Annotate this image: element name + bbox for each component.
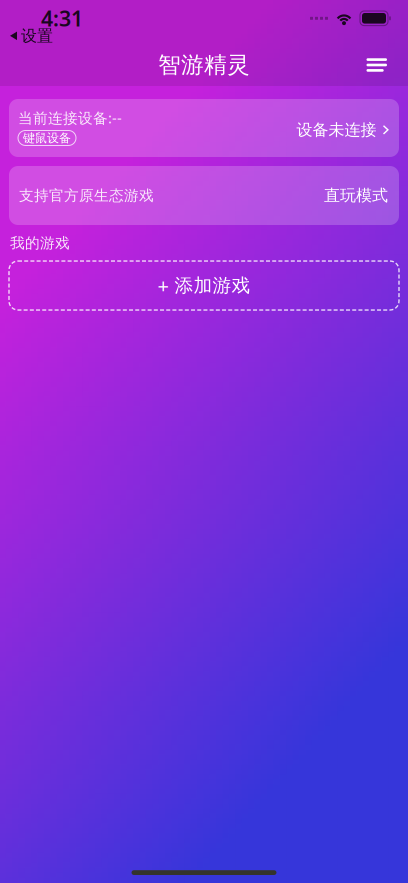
staticText: 添加游戏 — [174, 274, 250, 297]
button[interactable]: 设置 — [10, 26, 53, 46]
staticText: 键鼠设备 — [23, 131, 71, 145]
staticText: 我的游戏 — [10, 234, 70, 252]
staticText: 设备未连接 — [296, 120, 376, 140]
staticText: 直玩模式 — [324, 186, 388, 205]
staticText: 设置 — [21, 26, 53, 46]
staticText: 当前连接设备:-- — [18, 108, 122, 127]
button[interactable]: 支持官方原生态游戏 — [9, 166, 399, 225]
button[interactable]: Menu — [355, 48, 398, 82]
staticText: 智游精灵 — [158, 51, 250, 79]
staticText: 4:31 — [41, 4, 83, 32]
staticText: 支持官方原生态游戏 — [19, 186, 154, 204]
button[interactable]: + — [9, 261, 399, 310]
staticText: + — [157, 272, 168, 299]
button[interactable]: 当前连接设备:-- — [9, 99, 399, 157]
